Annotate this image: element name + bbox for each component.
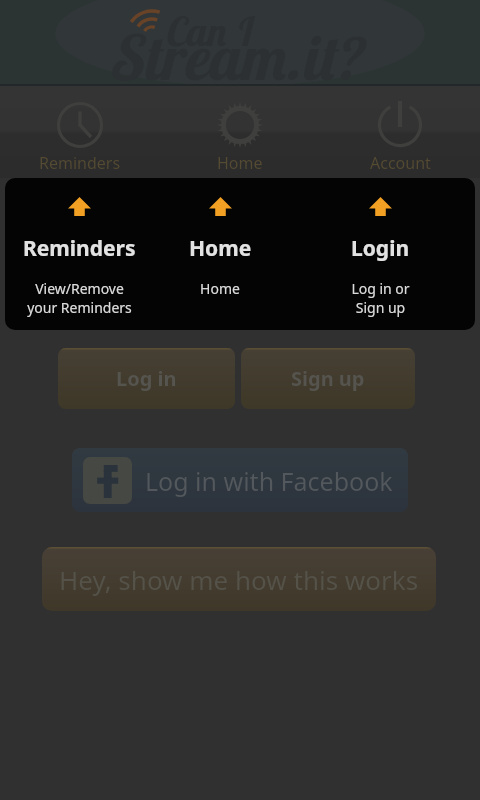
staticText: Hey, show me how this works [59, 562, 419, 597]
staticText: Stream.it? [108, 18, 360, 96]
button[interactable]: Reminders tab [0, 86, 160, 178]
staticText: Home [189, 234, 252, 263]
button[interactable]: Log in [58, 348, 235, 409]
staticText: Account [370, 152, 431, 174]
staticText: Log in or Sign up [351, 279, 410, 317]
staticText: Home [200, 279, 240, 298]
button[interactable]: Home tab [160, 86, 320, 178]
button[interactable]: Log in with Facebook [72, 448, 408, 512]
button[interactable]: Account tab [320, 86, 480, 178]
staticText: Sign up [291, 365, 365, 392]
staticText: Home [217, 152, 263, 174]
staticText: View/Remove your Reminders [27, 279, 132, 317]
button[interactable]: Sign up [241, 348, 415, 409]
staticText: Login [351, 234, 410, 263]
staticText: Reminders [39, 152, 121, 174]
staticText: Log in [116, 365, 177, 392]
button[interactable]: Hey, show me how this works [42, 547, 436, 611]
staticText: Log in with Facebook [145, 464, 393, 498]
staticText: Can I [163, 6, 250, 56]
staticText: Reminders [23, 234, 136, 263]
